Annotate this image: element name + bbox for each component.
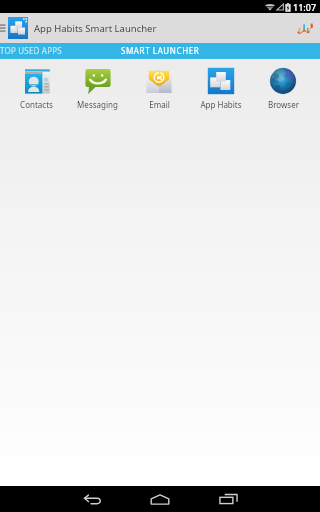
staticText: Browser — [268, 99, 299, 110]
staticText: Messaging — [77, 99, 118, 110]
button[interactable]: Statistics — [290, 13, 320, 43]
staticText: TOP USED APPS — [0, 45, 62, 56]
staticText: SMART LAUNCHER — [121, 45, 200, 56]
button[interactable]: SMART LAUNCHER — [105, 43, 215, 59]
button[interactable]: Navigation drawer — [0, 13, 7, 43]
staticText: App Habits Smart Launcher — [34, 22, 157, 35]
staticText: Email — [149, 99, 170, 110]
button[interactable]: TOP USED APPS — [0, 43, 80, 59]
staticText: Contacts — [20, 99, 53, 110]
button[interactable]: Recent apps — [204, 486, 252, 512]
staticText: App Habits — [200, 99, 242, 110]
button[interactable]: Browser — [252, 66, 314, 110]
button[interactable]: Back — [68, 486, 116, 512]
staticText: 11:07 — [293, 1, 317, 13]
button[interactable]: App Habits — [190, 66, 252, 110]
button[interactable]: Email — [128, 66, 190, 110]
button[interactable]: Home — [136, 486, 184, 512]
button[interactable]: Messaging — [67, 66, 128, 110]
button[interactable]: Contacts — [6, 66, 67, 110]
